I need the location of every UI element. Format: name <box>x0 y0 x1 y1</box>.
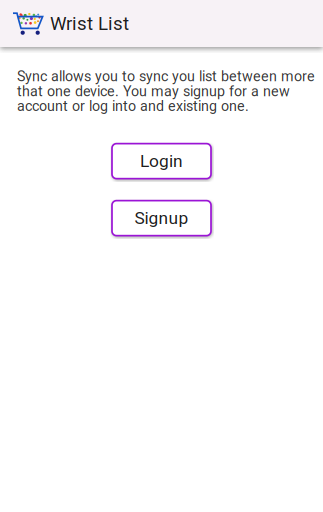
staticText: Wrist List <box>50 13 129 34</box>
button[interactable]: Signup <box>112 201 211 236</box>
button[interactable]: Login <box>112 144 211 179</box>
staticText: Sync allows you to sync you list between… <box>17 69 315 114</box>
staticText: Signup <box>134 208 188 228</box>
staticText: Login <box>140 151 183 171</box>
